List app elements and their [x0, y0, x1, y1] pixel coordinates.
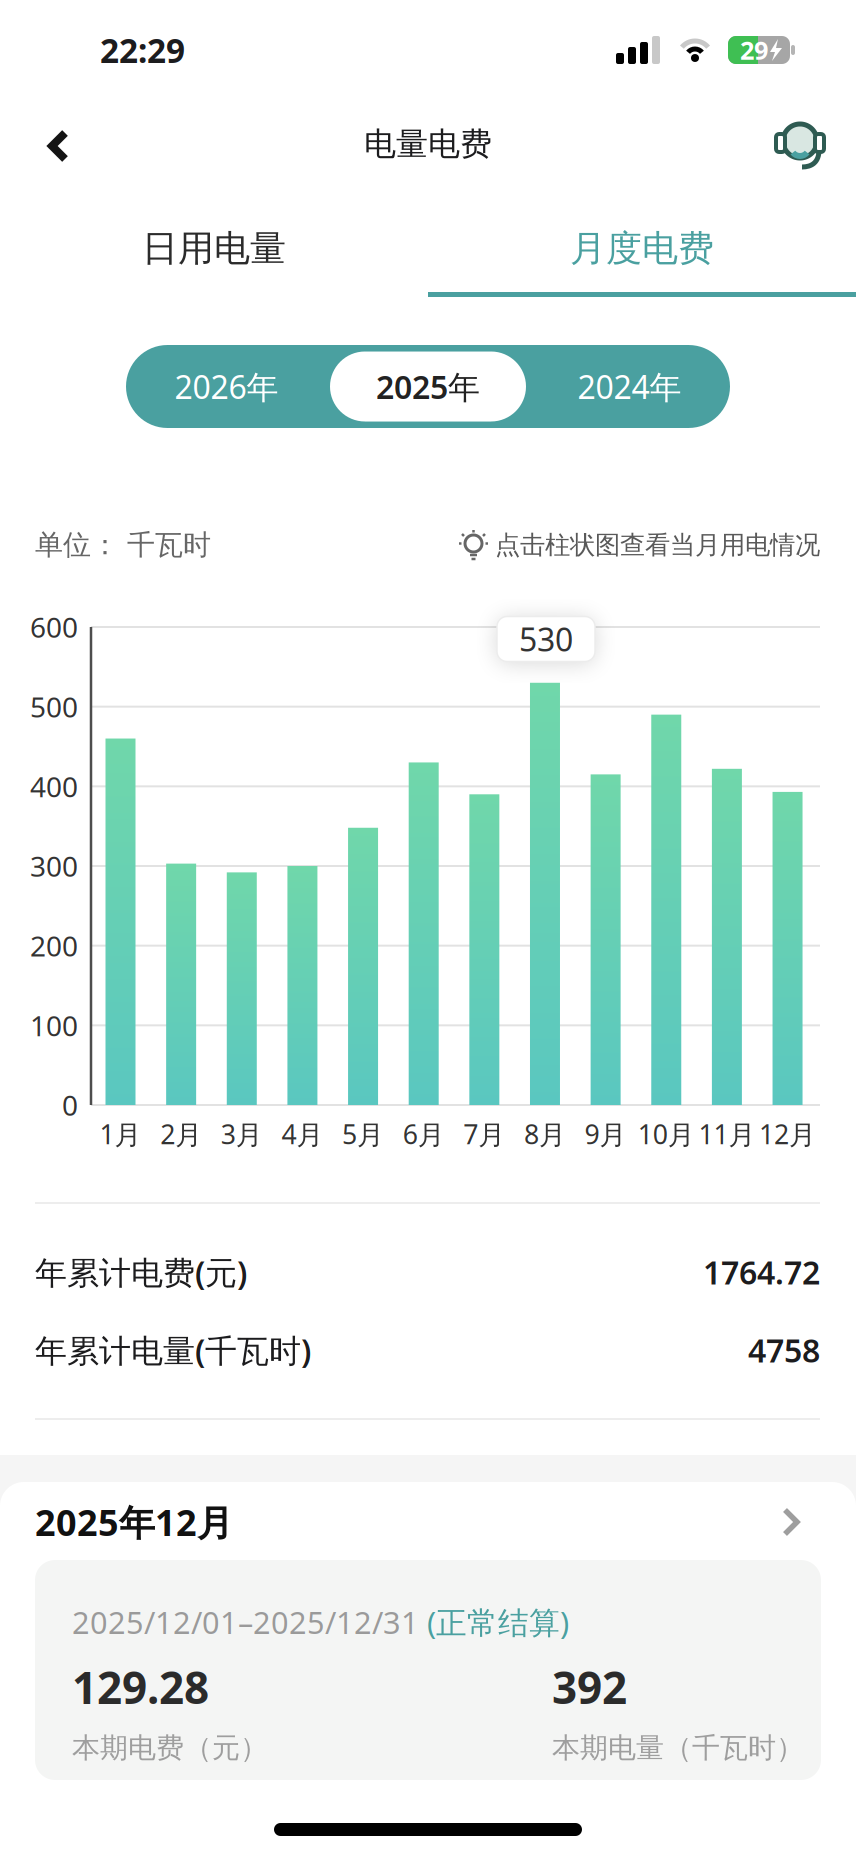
staticText: 本期电费（元）	[72, 1731, 268, 1765]
staticText: 月度电费	[570, 226, 714, 271]
staticText: 日用电量	[142, 226, 286, 271]
staticText: 500	[30, 688, 78, 725]
button[interactable]: 返回	[0, 99, 90, 191]
button[interactable]: 2024年	[529, 345, 730, 428]
staticText: 12月	[759, 1116, 816, 1152]
button[interactable]: 12月 393千瓦时	[772, 792, 802, 1105]
button[interactable]: 月度电费	[428, 194, 856, 302]
button[interactable]: 5月 348千瓦时	[348, 828, 378, 1105]
button[interactable]: 7月 390千瓦时	[469, 794, 499, 1105]
staticText: 2025年	[376, 365, 480, 408]
button[interactable]: 9月 415千瓦时	[591, 774, 621, 1105]
staticText: 3月	[221, 1116, 263, 1152]
button[interactable]: 日用电量	[0, 194, 428, 302]
staticText: 电量电费	[364, 124, 492, 164]
staticText: 100	[30, 1007, 78, 1044]
staticText: 530	[519, 618, 573, 660]
staticText: 8月	[524, 1116, 566, 1152]
button[interactable]: 1月 460千瓦时	[105, 738, 135, 1105]
button[interactable]: 客服	[758, 99, 856, 189]
button[interactable]: 4月 300千瓦时	[287, 866, 317, 1105]
staticText: 300	[30, 847, 78, 885]
staticText: 2025/12/01–2025/12/31	[72, 1602, 419, 1642]
button[interactable]: 10月 490千瓦时	[651, 715, 681, 1105]
staticText: 200	[30, 927, 78, 964]
button[interactable]: 2025年	[327, 345, 529, 428]
staticText: 2024年	[577, 365, 681, 408]
button[interactable]: 2025年12月	[0, 1494, 856, 1550]
staticText: 单位： 千瓦时	[35, 528, 211, 562]
button[interactable]: 11月 422千瓦时	[712, 769, 742, 1105]
staticText: 10月	[638, 1116, 695, 1152]
staticText: 年累计电费(元)	[35, 1251, 247, 1293]
staticText: 9月	[585, 1116, 627, 1152]
staticText: 1月	[99, 1116, 141, 1152]
staticText: 4月	[281, 1116, 323, 1152]
staticText: 7月	[463, 1116, 505, 1152]
staticText: 2月	[160, 1116, 202, 1152]
staticText: 1764.72	[703, 1251, 820, 1293]
staticText: 29	[740, 33, 768, 67]
button[interactable]: 2月 303千瓦时	[166, 864, 196, 1105]
staticText: 5月	[342, 1116, 384, 1152]
staticText: 年累计电量(千瓦时)	[35, 1329, 311, 1371]
staticText: 11月	[698, 1116, 755, 1152]
staticText: 2026年	[174, 365, 278, 408]
staticText: 0	[62, 1086, 78, 1124]
staticText: 400	[30, 768, 78, 805]
staticText: 本期电量（千瓦时）	[552, 1731, 804, 1765]
button[interactable]: 8月 530千瓦时	[530, 683, 560, 1105]
button[interactable]: 6月 430千瓦时	[409, 762, 439, 1105]
staticText: 22:29	[100, 28, 185, 72]
button[interactable]: 2026年	[126, 345, 327, 428]
staticText: 点击柱状图查看当月用电情况	[495, 529, 820, 560]
staticText: (正常结算)	[427, 1602, 569, 1642]
staticText: 392	[552, 1658, 627, 1716]
staticText: 600	[30, 608, 78, 646]
staticText: 6月	[403, 1116, 445, 1152]
staticText: 129.28	[72, 1658, 209, 1716]
staticText: 2025年12月	[35, 1498, 233, 1546]
button[interactable]: 3月 292千瓦时	[227, 872, 257, 1105]
staticText: 4758	[748, 1329, 820, 1371]
